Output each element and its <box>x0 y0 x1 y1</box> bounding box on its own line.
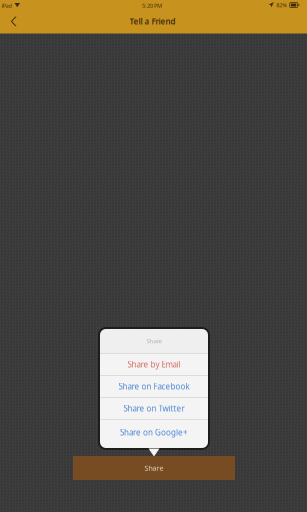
button[interactable]: Back <box>2 11 26 31</box>
button[interactable]: Share by Email <box>100 354 208 375</box>
button[interactable]: Share on Google+ <box>100 420 208 445</box>
staticText: Share by Email <box>127 359 180 370</box>
staticText: Share <box>146 337 161 345</box>
staticText: 5:20 PM <box>142 2 162 9</box>
staticText: Share <box>144 463 163 473</box>
staticText: Share on Twitter <box>123 403 184 414</box>
button[interactable]: Share on Twitter <box>100 398 208 419</box>
button[interactable]: Share on Facebook <box>100 376 208 397</box>
staticText: iPad <box>1 2 11 9</box>
button[interactable]: Share <box>73 456 235 480</box>
staticText: 82% <box>276 1 287 9</box>
staticText: Tell a Friend <box>129 16 175 27</box>
staticText: Share on Facebook <box>118 381 189 392</box>
staticText: Share on Google+ <box>120 427 188 438</box>
